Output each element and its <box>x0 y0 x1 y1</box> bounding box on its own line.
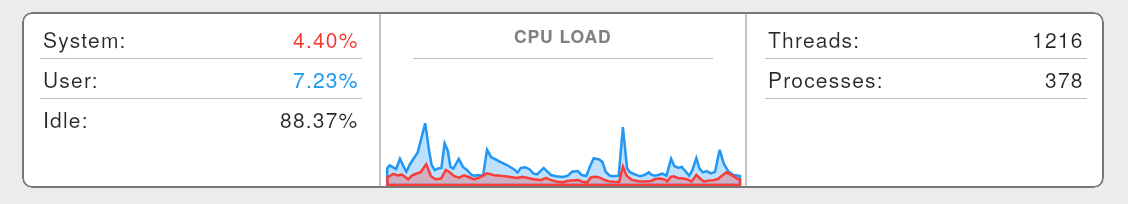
staticText: System: <box>43 24 127 54</box>
staticText: Threads: <box>768 24 861 54</box>
button[interactable]: User: <box>22 59 379 98</box>
staticText: 4.40% <box>293 24 359 54</box>
staticText: 7.23% <box>293 64 359 94</box>
staticText: 1216 <box>1032 24 1084 54</box>
staticText: 378 <box>1045 64 1084 94</box>
button[interactable]: System: <box>22 19 379 58</box>
staticText: Idle: <box>43 104 89 134</box>
staticText: 88.37% <box>280 104 359 134</box>
staticText: User: <box>43 64 99 94</box>
button[interactable]: Idle: <box>22 99 379 139</box>
staticText: Processes: <box>768 64 884 94</box>
button[interactable]: Processes: <box>747 59 1104 98</box>
staticText: CPU LOAD <box>514 23 612 48</box>
button[interactable]: Threads: <box>747 19 1104 58</box>
